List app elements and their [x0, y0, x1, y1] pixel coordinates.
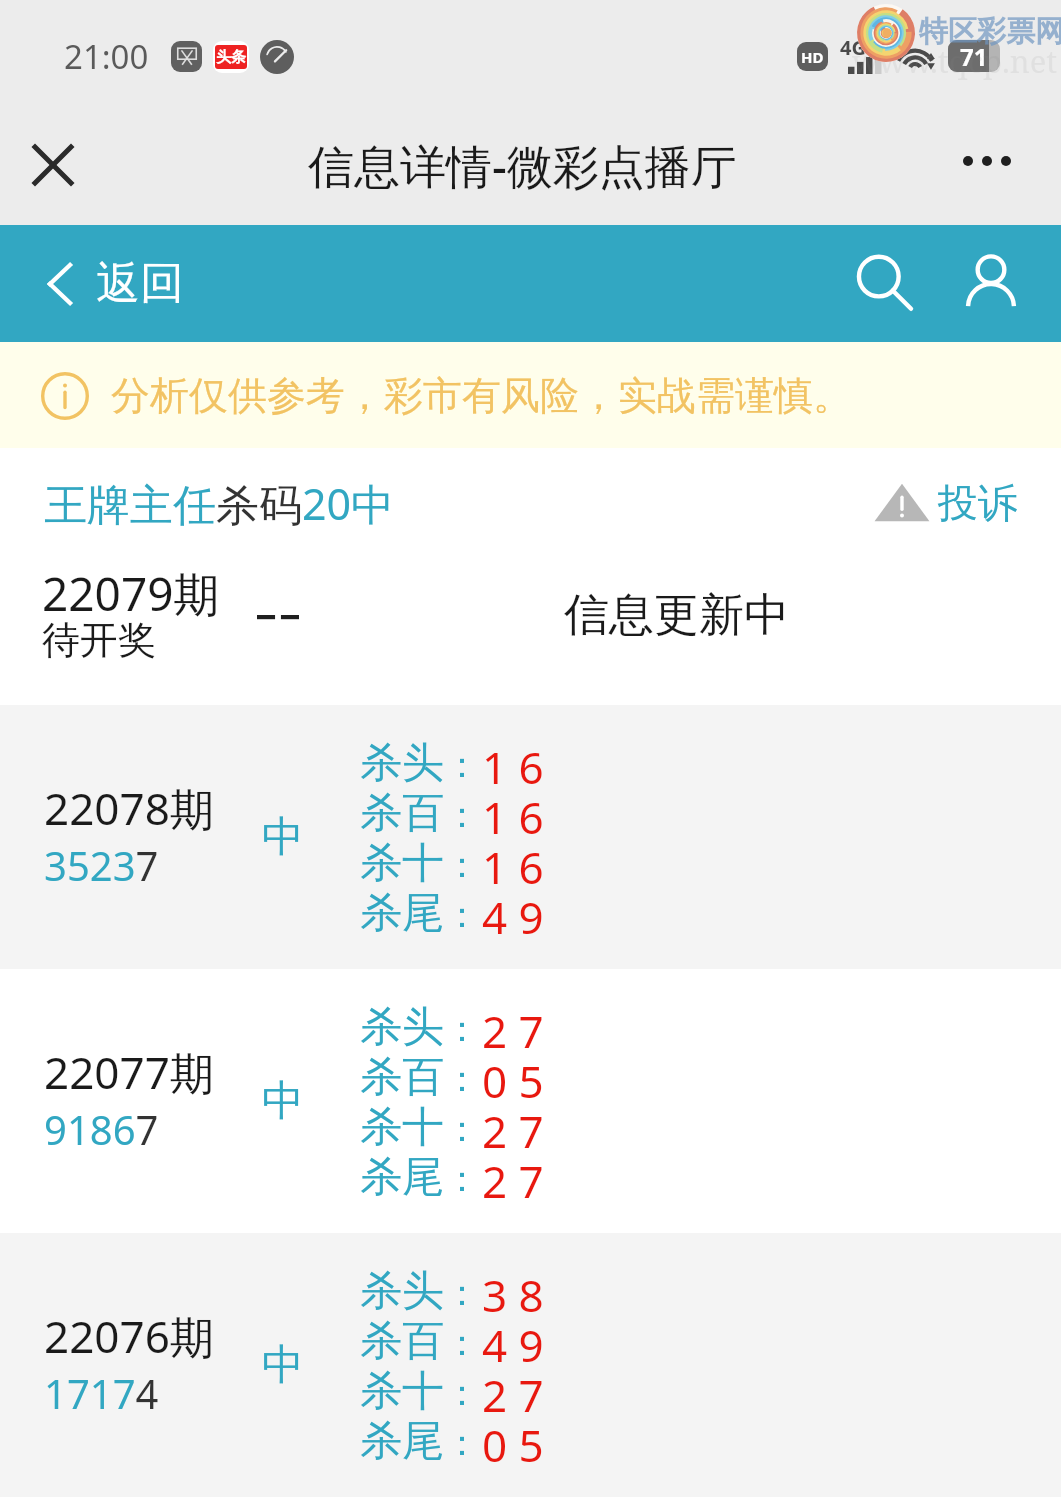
staticText: 2 7	[482, 1001, 544, 1051]
staticText: 0 5	[482, 1415, 544, 1465]
staticText: 杀十	[360, 1365, 444, 1415]
staticText: www.tqcp.net	[852, 40, 1058, 82]
staticText: 22077期	[44, 1042, 214, 1102]
staticText: 2 7	[482, 1151, 544, 1201]
staticText: 返回	[96, 256, 184, 311]
staticText: 中	[262, 1075, 304, 1128]
button[interactable]: 投诉	[874, 478, 1018, 528]
staticText: 投诉	[938, 478, 1018, 528]
staticText: ：	[444, 1056, 480, 1101]
button[interactable]: 返回	[48, 256, 184, 311]
staticText: 中	[262, 1339, 304, 1392]
button[interactable]: 22077期	[0, 969, 1061, 1233]
staticText: 杀十	[360, 837, 444, 887]
staticText: 中	[262, 811, 304, 864]
staticText: 4G	[840, 34, 866, 61]
staticText: ：	[444, 742, 480, 787]
button[interactable]: Search	[839, 238, 931, 330]
staticText: 特区彩票网	[919, 13, 1061, 50]
staticText: 0 5	[482, 1051, 544, 1101]
staticText: ：	[444, 1106, 480, 1151]
staticText: ：	[444, 1370, 480, 1415]
staticText: ：	[444, 1320, 480, 1365]
staticText: 杀十	[360, 1101, 444, 1151]
staticText: 1 6	[482, 787, 544, 837]
staticText: 杀头	[360, 737, 444, 787]
button[interactable]: More options	[943, 117, 1031, 205]
button[interactable]: Close	[12, 124, 94, 206]
staticText: 杀尾	[360, 887, 444, 937]
staticText: 信息更新中	[564, 587, 789, 644]
staticText: 杀尾	[360, 1415, 444, 1465]
button[interactable]: Profile	[945, 238, 1037, 330]
staticText: 信息详情-微彩点播厅	[308, 134, 737, 197]
staticText: ：	[444, 1006, 480, 1051]
staticText: 22076期	[44, 1306, 214, 1366]
staticText: 1 6	[482, 837, 544, 887]
staticText: 头条	[216, 48, 246, 67]
staticText: ：	[444, 1156, 480, 1201]
staticText: 杀头	[360, 1265, 444, 1315]
staticText: HD	[801, 47, 824, 67]
staticText: 35237	[44, 838, 159, 892]
staticText: 21:00	[64, 34, 149, 79]
staticText: 17174	[44, 1366, 159, 1420]
staticText: 2 7	[482, 1101, 544, 1151]
button[interactable]: 王牌主任杀码20中	[44, 474, 395, 533]
staticText: 91867	[44, 1102, 159, 1156]
staticText: 71	[960, 40, 988, 72]
staticText: 杀百	[360, 1051, 444, 1101]
staticText: ：	[444, 1420, 480, 1465]
button[interactable]: 22078期	[0, 705, 1061, 969]
staticText: 杀百	[360, 787, 444, 837]
staticText: 22078期	[44, 778, 214, 838]
button[interactable]: 22076期	[0, 1233, 1061, 1497]
staticText: 2 7	[482, 1365, 544, 1415]
staticText: 3 8	[482, 1265, 544, 1315]
staticText: ：	[444, 1270, 480, 1315]
staticText: 待开奖	[42, 616, 156, 664]
staticText: 杀头	[360, 1001, 444, 1051]
staticText: 1 6	[482, 737, 544, 787]
staticText: 4 9	[482, 887, 544, 937]
staticText: 杀尾	[360, 1151, 444, 1201]
staticText: 22079期	[42, 562, 220, 625]
staticText: ：	[444, 842, 480, 887]
staticText: 分析仅供参考，彩市有风险，实战需谨慎。	[111, 371, 852, 420]
staticText: 4 9	[482, 1315, 544, 1365]
staticText: 杀百	[360, 1315, 444, 1365]
staticText: ：	[444, 792, 480, 837]
button[interactable]: 22079期	[0, 558, 1061, 705]
staticText: ：	[444, 892, 480, 937]
